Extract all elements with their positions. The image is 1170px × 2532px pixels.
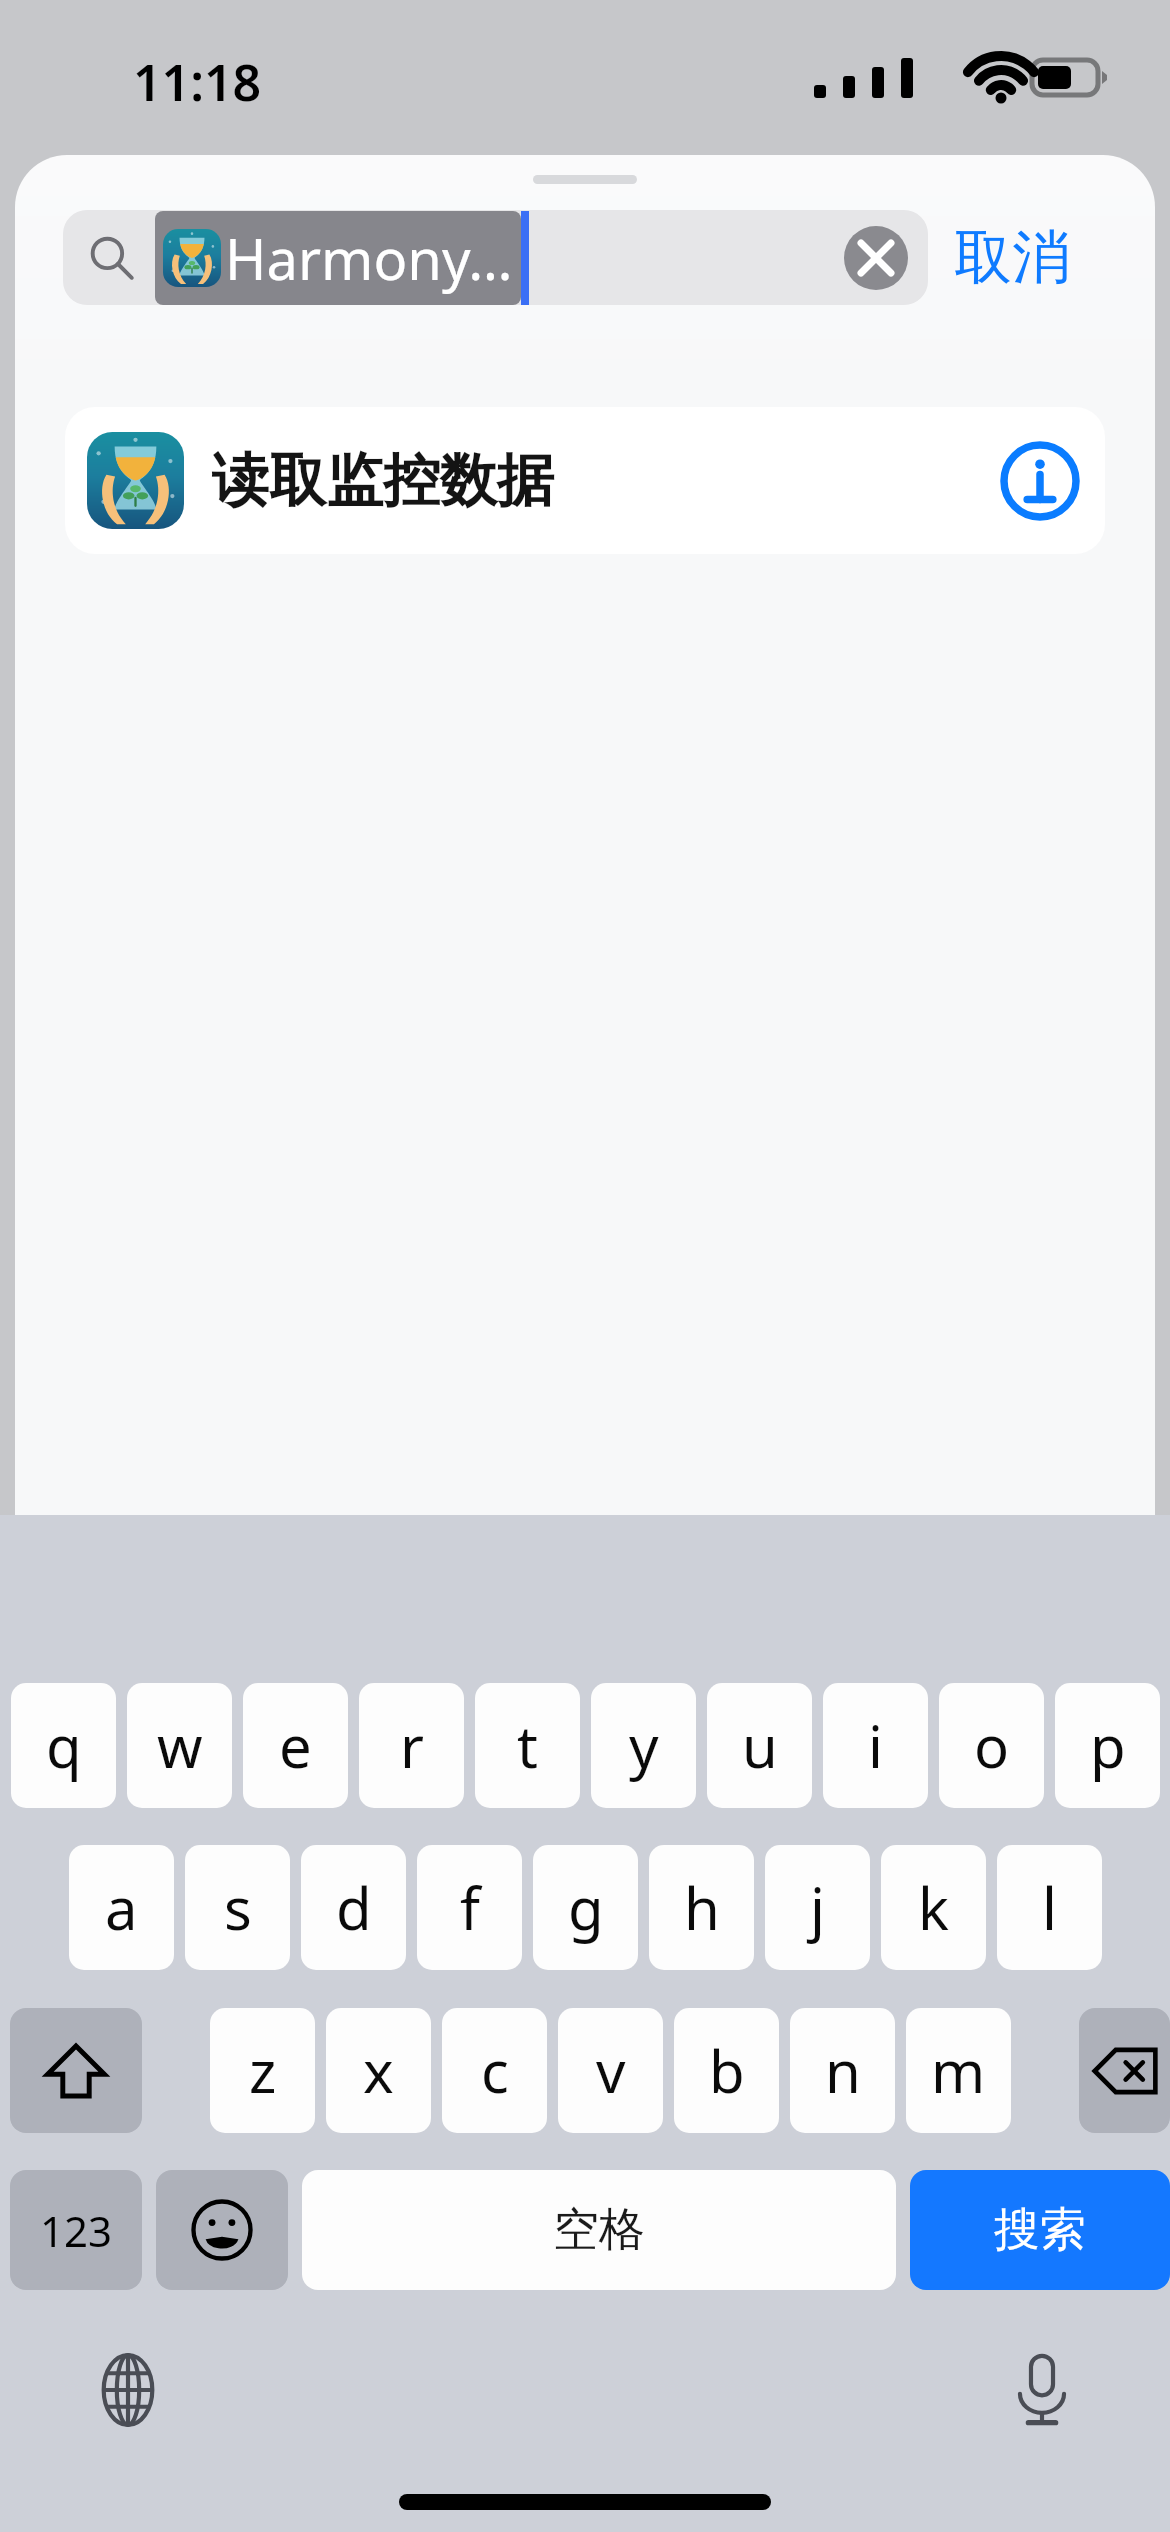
button[interactable]: q <box>11 1683 116 1808</box>
button[interactable]: Harmony… <box>63 210 928 305</box>
staticText: w <box>157 1706 203 1785</box>
button[interactable]: g <box>533 1845 638 1970</box>
staticText: z <box>249 2031 277 2110</box>
staticText: k <box>918 1868 949 1947</box>
staticText: a <box>105 1868 138 1947</box>
staticText: e <box>279 1706 312 1785</box>
button[interactable]: j <box>765 1845 870 1970</box>
button[interactable]: m <box>906 2008 1011 2133</box>
staticText: y <box>629 1706 659 1785</box>
button[interactable]: f <box>417 1845 522 1970</box>
staticText: t <box>517 1706 538 1785</box>
button[interactable]: Clear text <box>844 226 908 290</box>
button[interactable]: 123 <box>10 2170 142 2290</box>
staticText: v <box>596 2031 626 2110</box>
staticText: o <box>974 1706 1010 1785</box>
button[interactable]: 搜索 <box>910 2170 1170 2290</box>
staticText: g <box>568 1868 604 1947</box>
button[interactable]: i <box>823 1683 928 1808</box>
button[interactable]: r <box>359 1683 464 1808</box>
button[interactable]: k <box>881 1845 986 1970</box>
button[interactable]: a <box>69 1845 174 1970</box>
staticText: b <box>709 2031 745 2110</box>
button[interactable]: Shift <box>10 2008 142 2133</box>
staticText: c <box>481 2031 509 2110</box>
button[interactable]: v <box>558 2008 663 2133</box>
staticText: u <box>742 1706 778 1785</box>
staticText: q <box>46 1706 82 1785</box>
staticText: 空格 <box>553 2201 645 2259</box>
staticText: h <box>684 1868 720 1947</box>
button[interactable]: n <box>790 2008 895 2133</box>
button[interactable]: e <box>243 1683 348 1808</box>
staticText: r <box>400 1706 424 1785</box>
button[interactable]: z <box>210 2008 315 2133</box>
button[interactable]: y <box>591 1683 696 1808</box>
staticText: 取消 <box>954 221 1070 294</box>
staticText: j <box>810 1868 825 1947</box>
staticText: p <box>1090 1706 1126 1785</box>
staticText: f <box>460 1868 480 1947</box>
button[interactable]: w <box>127 1683 232 1808</box>
staticText: 搜索 <box>994 2201 1086 2259</box>
button[interactable]: c <box>442 2008 547 2133</box>
staticText: 123 <box>40 2202 113 2259</box>
button[interactable]: p <box>1055 1683 1160 1808</box>
staticText: s <box>224 1868 252 1947</box>
staticText: 11:18 <box>133 48 262 116</box>
button[interactable]: h <box>649 1845 754 1970</box>
button[interactable]: Change keyboard <box>78 2340 178 2440</box>
button[interactable]: 空格 <box>302 2170 896 2290</box>
staticText: d <box>336 1868 372 1947</box>
button[interactable]: b <box>674 2008 779 2133</box>
button[interactable]: Dictation <box>992 2340 1092 2440</box>
button[interactable]: t <box>475 1683 580 1808</box>
button[interactable]: Info <box>997 438 1083 524</box>
button[interactable]: 取消 <box>938 210 1086 305</box>
staticText: l <box>1042 1868 1057 1947</box>
staticText: Harmony… <box>225 220 513 296</box>
button[interactable]: u <box>707 1683 812 1808</box>
staticText: m <box>931 2031 986 2110</box>
staticText: 读取监控数据 <box>212 445 554 517</box>
button[interactable]: 读取监控数据 <box>65 407 1105 554</box>
staticText: n <box>825 2031 861 2110</box>
button[interactable]: s <box>185 1845 290 1970</box>
button[interactable]: l <box>997 1845 1102 1970</box>
button[interactable]: d <box>301 1845 406 1970</box>
button[interactable]: x <box>326 2008 431 2133</box>
button[interactable]: o <box>939 1683 1044 1808</box>
button[interactable]: Emoji <box>156 2170 288 2290</box>
staticText: x <box>363 2031 394 2110</box>
button[interactable]: Backspace <box>1079 2008 1170 2133</box>
staticText: i <box>868 1706 883 1785</box>
